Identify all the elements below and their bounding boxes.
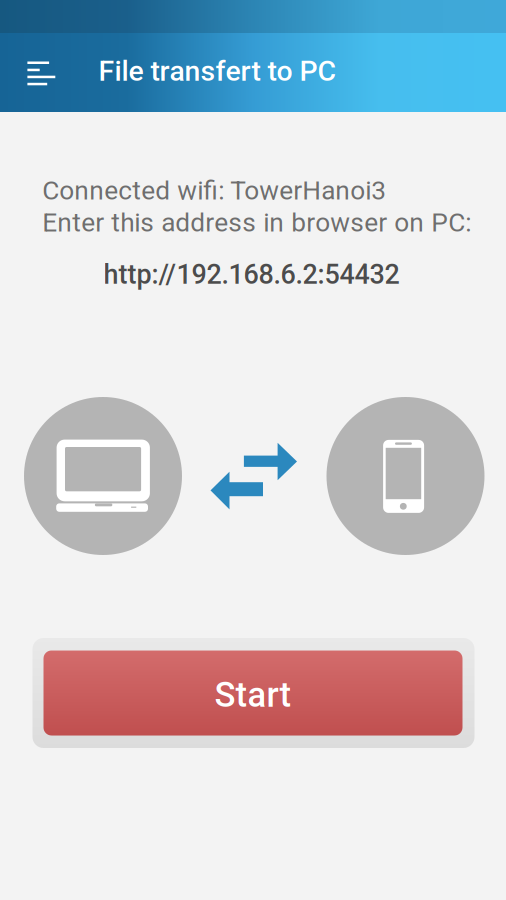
staticText: Connected wifi: TowerHanoi3 [42,175,386,206]
button[interactable]: Open navigation menu [13,45,69,101]
staticText: Enter this address in browser on PC: [42,207,471,238]
staticText: Start [214,675,291,715]
staticText: http://192.168.6.2:54432 [103,259,399,290]
staticText: File transfert to PC [99,54,337,88]
button[interactable]: Start [32,638,474,748]
